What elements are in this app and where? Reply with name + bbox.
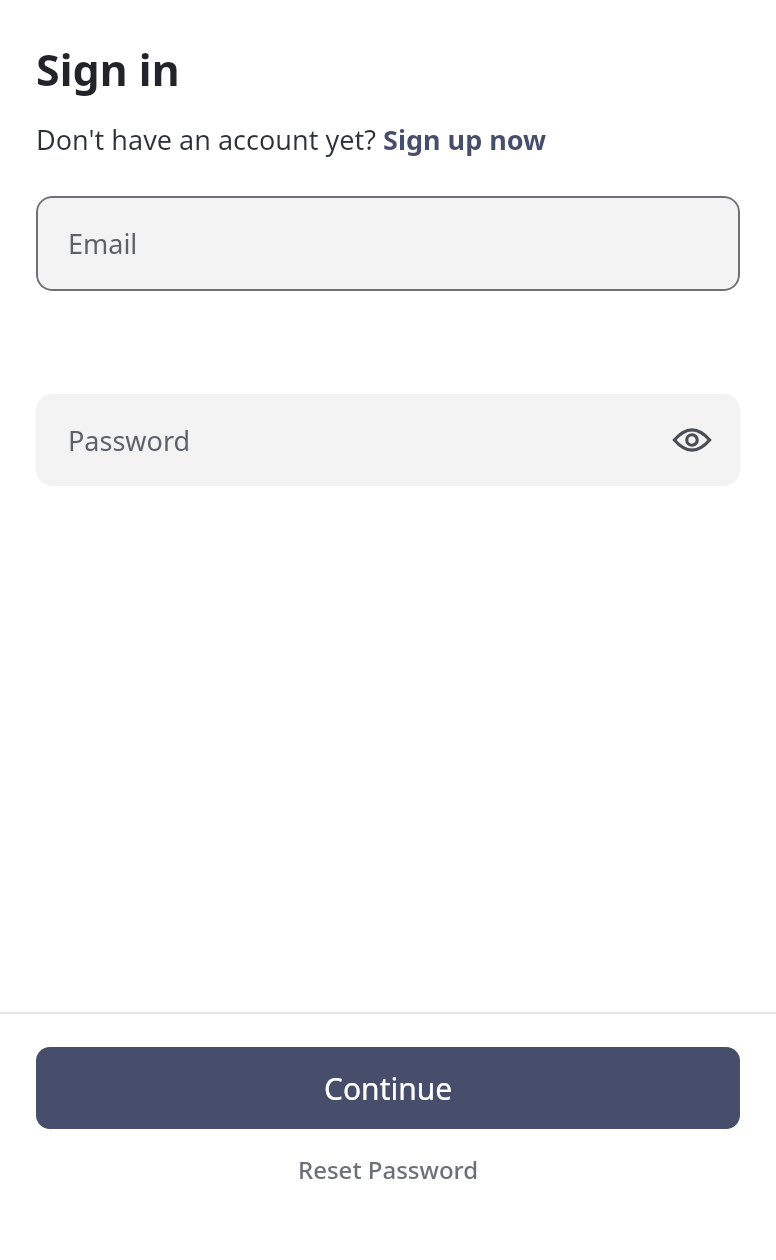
- button[interactable]: Password: [36, 394, 740, 486]
- button[interactable]: Continue: [36, 1047, 740, 1129]
- button[interactable]: Email: [36, 196, 740, 291]
- staticText: Sign in: [36, 40, 180, 99]
- staticText: Password: [68, 422, 191, 459]
- staticText: Continue: [324, 1068, 453, 1109]
- button[interactable]: Show password: [668, 416, 716, 464]
- button[interactable]: Reset Password: [0, 1143, 776, 1196]
- staticText: Don't have an account yet?: [36, 121, 383, 158]
- staticText: Reset Password: [298, 1153, 479, 1186]
- button[interactable]: Sign up now: [383, 121, 547, 158]
- staticText: Sign up now: [383, 121, 547, 158]
- staticText: Email: [68, 225, 138, 262]
